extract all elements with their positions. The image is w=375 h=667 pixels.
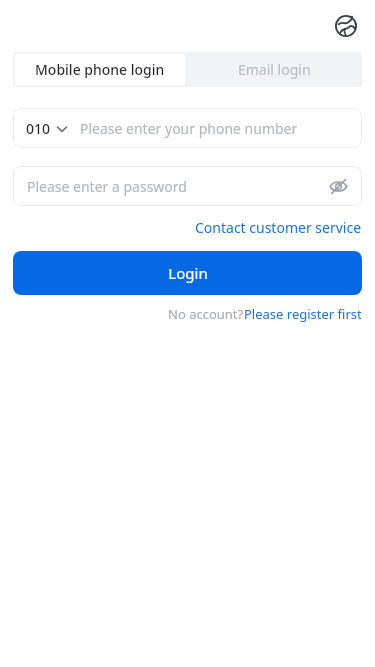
- staticText: No account?: [168, 305, 244, 323]
- button[interactable]: Please enter your phone number: [80, 108, 362, 148]
- staticText: Please enter a password: [27, 177, 187, 196]
- button[interactable]: Email login: [187, 52, 362, 87]
- button[interactable]: Please register first: [244, 305, 362, 323]
- button[interactable]: Contact customer service: [195, 218, 362, 237]
- staticText: Login: [168, 263, 208, 283]
- staticText: Mobile phone login: [35, 60, 165, 79]
- button[interactable]: Login: [13, 251, 362, 295]
- button[interactable]: Show password: [324, 172, 352, 200]
- button[interactable]: Mobile phone login: [15, 54, 185, 85]
- staticText: 010: [26, 119, 51, 138]
- button[interactable]: 010: [26, 119, 68, 138]
- button[interactable]: Change language: [329, 9, 363, 43]
- staticText: Please enter your phone number: [80, 119, 298, 138]
- staticText: Please register first: [244, 305, 362, 323]
- staticText: Contact customer service: [195, 218, 362, 237]
- staticText: Email login: [238, 60, 311, 79]
- button[interactable]: Please enter a password: [27, 166, 324, 206]
